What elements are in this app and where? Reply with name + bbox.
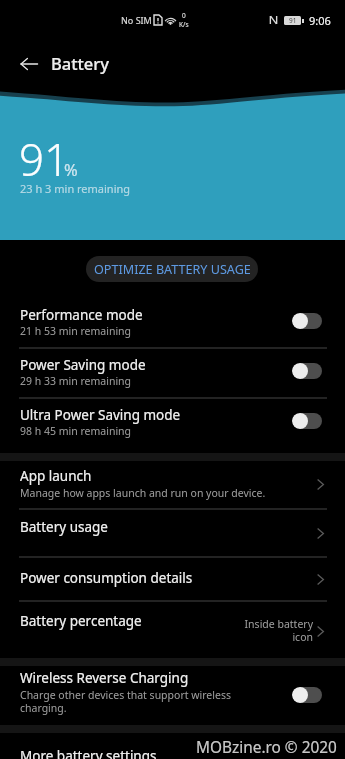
staticText: No SIM <box>121 14 152 26</box>
button[interactable]: Toggle <box>292 313 322 329</box>
button[interactable]: Toggle <box>292 687 322 703</box>
button[interactable] <box>0 461 345 508</box>
staticText: 0 <box>182 11 186 20</box>
button[interactable]: Toggle <box>292 413 322 429</box>
staticText: Performance mode <box>20 306 143 324</box>
button[interactable] <box>0 294 345 342</box>
staticText: Ultra Power Saving mode <box>20 406 181 424</box>
staticText: % <box>64 158 78 180</box>
staticText: 91 <box>19 129 70 189</box>
button[interactable]: OPTIMIZE BATTERY USAGE <box>86 256 258 282</box>
staticText: Inside battery icon <box>243 617 313 644</box>
staticText: 29 h 33 min remaining <box>20 374 132 388</box>
staticText: K/s <box>179 20 189 29</box>
button[interactable] <box>0 601 345 657</box>
staticText: 9:06 <box>309 13 331 28</box>
staticText: 98 h 45 min remaining <box>20 424 132 438</box>
staticText: OPTIMIZE BATTERY USAGE <box>94 261 251 278</box>
button[interactable] <box>0 394 345 442</box>
staticText: Charge other devices that support wirele… <box>20 688 238 715</box>
button[interactable] <box>0 509 345 556</box>
button[interactable] <box>0 662 345 722</box>
staticText: Power Saving mode <box>20 356 146 374</box>
staticText: More battery settings <box>20 747 157 759</box>
staticText: Battery percentage <box>20 612 142 630</box>
staticText: MOBzine.ro © 2020 <box>196 737 337 758</box>
staticText: 21 h 53 min remaining <box>20 324 132 338</box>
staticText: App launch <box>20 467 92 485</box>
staticText: 23 h 3 min remaining <box>20 181 131 196</box>
staticText: 91 <box>289 16 297 25</box>
staticText: Power consumption details <box>20 569 193 587</box>
staticText: Battery <box>51 52 110 74</box>
button[interactable] <box>0 727 345 759</box>
staticText: Manage how apps launch and run on your d… <box>20 486 266 500</box>
button[interactable] <box>0 557 345 601</box>
staticText: Battery usage <box>20 518 108 536</box>
button[interactable] <box>0 344 345 392</box>
button[interactable]: Back <box>15 50 43 78</box>
button[interactable]: Toggle <box>292 363 322 379</box>
staticText: Wireless Reverse Charging <box>20 669 189 687</box>
